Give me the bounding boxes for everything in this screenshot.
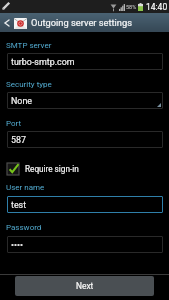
button[interactable]: Navigate up bbox=[0, 13, 13, 32]
staticText: 587 bbox=[11, 135, 26, 145]
staticText: test bbox=[11, 200, 27, 210]
staticText: Require sign-in bbox=[25, 164, 79, 174]
staticText: User name bbox=[6, 183, 45, 192]
staticText: turbo-smtp.com bbox=[11, 57, 75, 67]
button[interactable]: None bbox=[7, 92, 163, 109]
staticText: SMTP server bbox=[6, 41, 52, 50]
staticText: Outgoing server settings bbox=[31, 17, 133, 28]
staticText: Next bbox=[76, 281, 94, 291]
button[interactable]: test bbox=[7, 196, 163, 213]
staticText: 58% bbox=[126, 4, 137, 10]
staticText: Port bbox=[6, 119, 22, 128]
button[interactable]: Require sign-in bbox=[7, 162, 79, 176]
staticText: Security type bbox=[6, 80, 52, 89]
button[interactable]: •••• bbox=[7, 236, 163, 253]
button[interactable]: Next bbox=[15, 276, 154, 296]
staticText: Password bbox=[6, 223, 42, 232]
staticText: •••• bbox=[11, 240, 23, 250]
staticText: 14:40 bbox=[146, 2, 168, 12]
button[interactable]: 587 bbox=[7, 131, 163, 148]
button[interactable]: turbo-smtp.com bbox=[7, 53, 163, 70]
staticText: None bbox=[11, 96, 33, 106]
